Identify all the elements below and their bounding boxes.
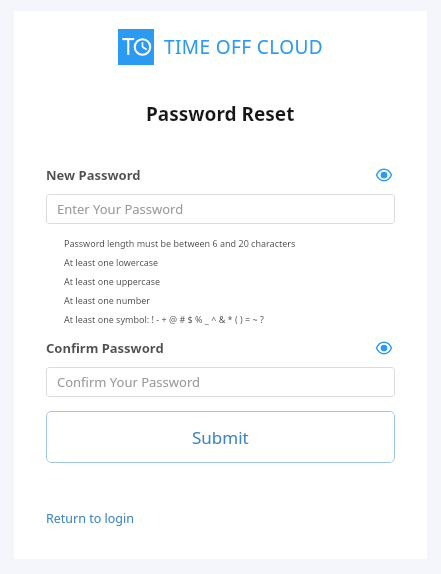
staticText: At least one symbol: ! - + @ # $ % _ ^ &… bbox=[64, 313, 264, 325]
staticText: TIME OFF CLOUD bbox=[164, 34, 324, 60]
staticText: New Password bbox=[46, 166, 141, 184]
staticText: Return to login bbox=[46, 510, 134, 527]
button[interactable]: TIME OFF CLOUD bbox=[46, 29, 395, 65]
button[interactable]: Confirm Your Password bbox=[46, 367, 395, 397]
button[interactable]: Return to login bbox=[46, 510, 134, 527]
button[interactable]: Enter Your Password bbox=[46, 194, 395, 224]
button[interactable]: Submit bbox=[46, 411, 395, 463]
staticText: At least one uppercase bbox=[64, 275, 161, 287]
staticText: Confirm Your Password bbox=[57, 373, 201, 391]
staticText: Password length must be between 6 and 20… bbox=[64, 237, 296, 249]
staticText: Confirm Password bbox=[46, 339, 164, 357]
button[interactable]: Show confirm password bbox=[373, 337, 395, 359]
staticText: Enter Your Password bbox=[57, 200, 184, 218]
staticText: Password Reset bbox=[146, 101, 295, 127]
staticText: At least one lowercase bbox=[64, 256, 159, 268]
button[interactable]: Show new password bbox=[373, 164, 395, 186]
staticText: Submit bbox=[192, 426, 249, 449]
staticText: At least one number bbox=[64, 294, 150, 306]
